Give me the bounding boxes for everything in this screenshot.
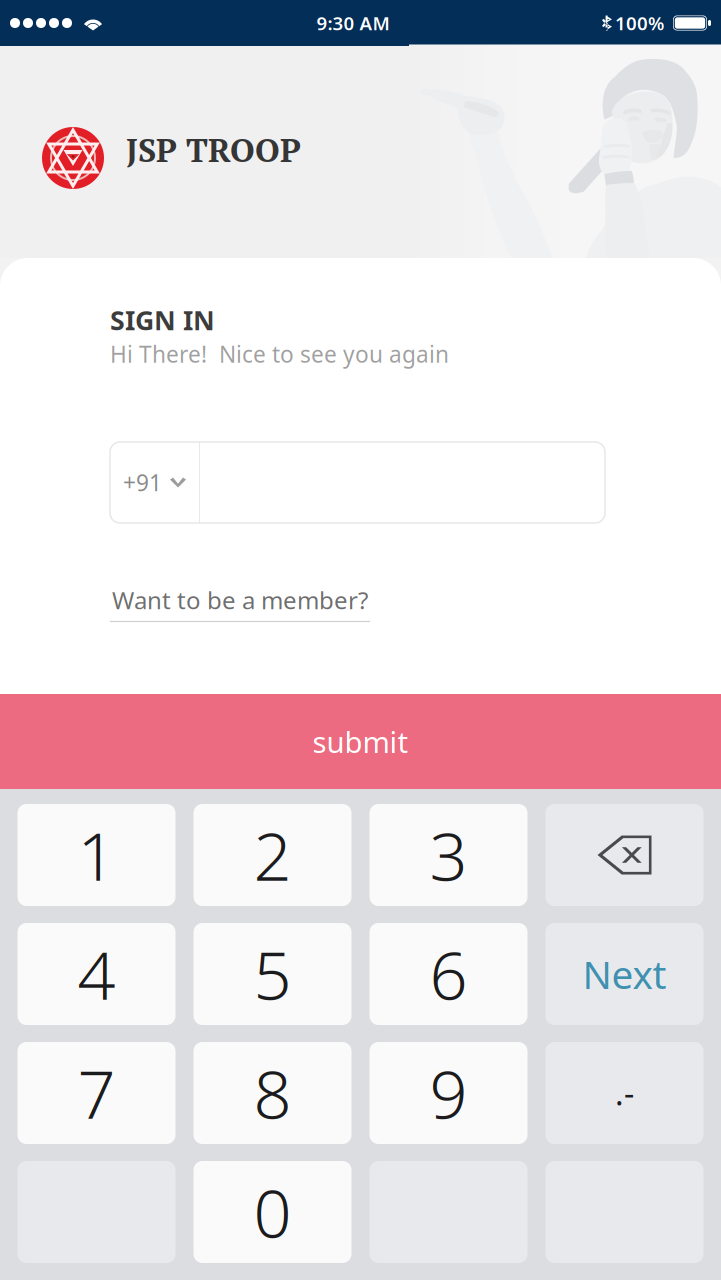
staticText: Want to be a member?	[112, 584, 368, 616]
staticText: 2	[253, 811, 291, 899]
staticText: 7	[77, 1049, 115, 1137]
button[interactable]: 6	[369, 923, 527, 1025]
staticText: 100%	[615, 11, 664, 35]
staticText: JSP TROOP	[126, 128, 301, 171]
button[interactable]: 8	[193, 1042, 351, 1144]
staticText: 8	[253, 1049, 291, 1137]
button[interactable]: Delete	[545, 804, 703, 906]
staticText: 1	[77, 811, 115, 899]
button[interactable]: 3	[369, 804, 527, 906]
staticText: 4	[77, 930, 115, 1018]
button[interactable]: 7	[17, 1042, 175, 1144]
staticText: Hi There! Nice to see you again	[110, 339, 449, 369]
staticText: 6	[429, 930, 467, 1018]
staticText: 3	[429, 811, 467, 899]
staticText: submit	[312, 722, 408, 761]
button[interactable]: 9	[369, 1042, 527, 1144]
staticText: 5	[253, 930, 291, 1018]
button[interactable]: 0	[193, 1161, 351, 1263]
staticText: .-	[615, 1072, 634, 1114]
staticText: 0	[253, 1168, 291, 1256]
staticText: Next	[582, 948, 666, 1000]
button[interactable]: 4	[17, 923, 175, 1025]
button[interactable]: Next	[545, 923, 703, 1025]
button[interactable]: .-	[545, 1042, 703, 1144]
staticText: +91	[123, 467, 162, 497]
staticText: SIGN IN	[110, 302, 215, 338]
button[interactable]: Want to be a member?	[110, 584, 370, 622]
button[interactable]: submit	[0, 694, 721, 789]
button[interactable]: 1	[17, 804, 175, 906]
staticText: 9	[429, 1049, 467, 1137]
button[interactable]: 2	[193, 804, 351, 906]
staticText: 9:30 AM	[316, 11, 389, 35]
button[interactable]: 5	[193, 923, 351, 1025]
